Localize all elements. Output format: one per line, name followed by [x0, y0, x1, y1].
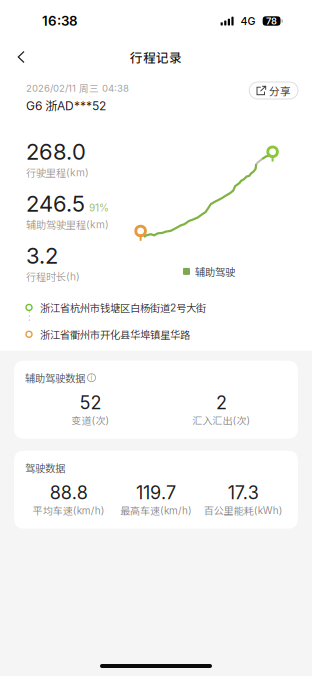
button[interactable]: 分享: [249, 82, 298, 99]
staticText: 88.8: [50, 482, 88, 504]
staticText: 16:38: [42, 13, 78, 29]
staticText: 2026/02/11 周三 04:38: [26, 81, 129, 95]
staticText: 52: [79, 392, 101, 414]
staticText: 变道(次): [71, 413, 109, 427]
button[interactable]: 返回: [8, 43, 34, 70]
staticText: 汇入汇出(次): [192, 413, 250, 427]
staticText: 91%: [89, 202, 109, 214]
staticText: 浙江省杭州市钱塘区白杨街道2号大街: [40, 300, 206, 315]
staticText: 百公里能耗(kWh): [204, 503, 283, 517]
staticText: 分享: [269, 83, 291, 98]
staticText: 辅助驾驶里程(km): [26, 217, 109, 232]
staticText: 2: [216, 392, 227, 414]
staticText: 行驶里程(km): [26, 165, 89, 180]
staticText: 辅助驾驶: [195, 264, 235, 279]
staticText: G6 浙AD***52: [26, 96, 106, 114]
staticText: 浙江省衢州市开化县华埠镇星华路: [40, 327, 190, 342]
staticText: 3.2: [26, 242, 58, 269]
staticText: 78: [266, 15, 277, 27]
staticText: 4G: [241, 14, 256, 27]
staticText: 119.7: [136, 482, 176, 504]
staticText: 17.3: [228, 482, 259, 504]
staticText: 行程时长(h): [26, 269, 80, 284]
staticText: 平均车速(km/h): [33, 503, 105, 517]
staticText: i: [90, 373, 92, 382]
staticText: 驾驶数据: [25, 460, 65, 475]
staticText: 辅助驾驶数据: [25, 370, 85, 385]
staticText: 246.5: [26, 190, 85, 217]
staticText: 行程记录: [130, 48, 182, 66]
staticText: 268.0: [26, 138, 86, 165]
staticText: 最高车速(km/h): [120, 503, 192, 517]
